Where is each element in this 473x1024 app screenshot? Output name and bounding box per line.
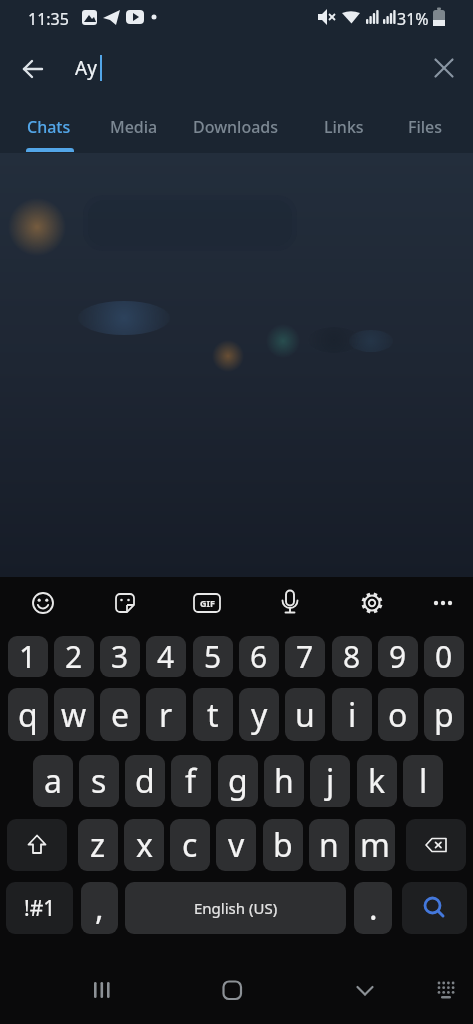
staticText: a: [44, 759, 62, 803]
button[interactable]: [105, 583, 145, 623]
button[interactable]: i: [332, 688, 372, 741]
staticText: k: [368, 759, 386, 803]
button[interactable]: .: [354, 882, 392, 934]
button[interactable]: [406, 819, 466, 871]
button[interactable]: s: [79, 755, 119, 807]
button[interactable]: [214, 972, 250, 1008]
button[interactable]: f: [171, 755, 211, 807]
staticText: 8: [343, 636, 361, 677]
button[interactable]: m: [355, 819, 395, 871]
button[interactable]: h: [264, 755, 304, 807]
button[interactable]: Downloads: [179, 103, 293, 150]
button[interactable]: [426, 50, 462, 86]
button[interactable]: [402, 882, 467, 934]
button[interactable]: Files: [394, 103, 457, 150]
button[interactable]: 4: [146, 636, 186, 677]
staticText: x: [136, 823, 153, 867]
button[interactable]: o: [378, 688, 418, 741]
staticText: 5: [204, 636, 222, 677]
button[interactable]: English (US): [125, 882, 346, 934]
button[interactable]: k: [357, 755, 397, 807]
button[interactable]: g: [218, 755, 258, 807]
button[interactable]: j: [310, 755, 350, 807]
button[interactable]: 8: [332, 636, 372, 677]
button[interactable]: q: [8, 688, 48, 741]
staticText: f: [185, 759, 197, 803]
button[interactable]: u: [285, 688, 325, 741]
staticText: Media: [110, 116, 158, 138]
button[interactable]: d: [125, 755, 165, 807]
staticText: w: [61, 693, 87, 737]
button[interactable]: y: [239, 688, 279, 741]
button[interactable]: w: [54, 688, 94, 741]
button[interactable]: c: [170, 819, 210, 871]
staticText: n: [319, 823, 339, 867]
staticText: m: [360, 823, 390, 867]
staticText: English (US): [194, 898, 278, 918]
button[interactable]: b: [263, 819, 303, 871]
staticText: Chats: [27, 116, 71, 138]
staticText: h: [274, 759, 294, 803]
staticText: y: [251, 693, 268, 737]
staticText: i: [348, 693, 357, 737]
button[interactable]: 3: [100, 636, 140, 677]
staticText: z: [90, 823, 106, 867]
staticText: Downloads: [193, 116, 279, 138]
staticText: o: [388, 693, 408, 737]
staticText: Files: [408, 116, 443, 138]
button[interactable]: Chats: [13, 103, 85, 150]
button[interactable]: 7: [285, 636, 325, 677]
button[interactable]: [14, 50, 52, 88]
button[interactable]: Links: [310, 103, 378, 150]
staticText: r: [159, 693, 173, 737]
button[interactable]: [7, 819, 67, 871]
staticText: q: [18, 693, 38, 737]
staticText: Ay: [75, 55, 97, 81]
staticText: g: [228, 759, 248, 803]
button[interactable]: x: [124, 819, 164, 871]
button[interactable]: 1: [8, 636, 48, 677]
button[interactable]: Media: [96, 103, 172, 150]
button[interactable]: [23, 583, 63, 623]
button[interactable]: p: [424, 688, 464, 741]
button[interactable]: !#1: [6, 882, 73, 934]
button[interactable]: 2: [54, 636, 94, 677]
button[interactable]: z: [78, 819, 118, 871]
button[interactable]: a: [33, 755, 73, 807]
staticText: 3: [111, 636, 129, 677]
staticText: 11:35: [28, 8, 69, 30]
staticText: ,: [95, 886, 104, 930]
staticText: GIF: [200, 597, 215, 609]
button[interactable]: ,: [81, 882, 118, 934]
button[interactable]: 0: [424, 636, 464, 677]
staticText: 0: [435, 636, 453, 677]
button[interactable]: 9: [378, 636, 418, 677]
button[interactable]: [423, 583, 463, 623]
staticText: 2: [65, 636, 83, 677]
button[interactable]: t: [193, 688, 233, 741]
button[interactable]: n: [309, 819, 349, 871]
button[interactable]: r: [146, 688, 186, 741]
staticText: Links: [324, 116, 364, 138]
button[interactable]: e: [100, 688, 140, 741]
staticText: c: [182, 823, 198, 867]
button[interactable]: v: [216, 819, 256, 871]
button[interactable]: [428, 972, 464, 1008]
button[interactable]: [270, 583, 310, 623]
staticText: d: [135, 759, 155, 803]
button[interactable]: [347, 972, 383, 1008]
button[interactable]: [352, 583, 392, 623]
staticText: p: [434, 693, 454, 737]
button[interactable]: 5: [193, 636, 233, 677]
button[interactable]: [83, 972, 119, 1008]
button[interactable]: l: [403, 755, 443, 807]
staticText: j: [326, 759, 335, 803]
staticText: b: [273, 823, 293, 867]
staticText: .: [369, 886, 378, 930]
staticText: 7: [296, 636, 314, 677]
button[interactable]: 6: [239, 636, 279, 677]
staticText: 31%: [397, 8, 429, 30]
staticText: 9: [389, 636, 407, 677]
button[interactable]: GIF: [187, 583, 227, 623]
staticText: u: [295, 693, 315, 737]
